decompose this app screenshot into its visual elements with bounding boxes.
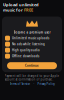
button[interactable]: Offline downloads: [5, 53, 59, 59]
button[interactable]: No ads while listening: [5, 41, 59, 47]
staticText: Offline downloads: [12, 54, 39, 58]
button[interactable]: High quality audio: [5, 47, 59, 53]
staticText: High quality audio: [12, 48, 40, 52]
staticText: Payment will be charged to your Apple ac…: [4, 74, 59, 81]
staticText: Upload unlimited: [3, 2, 39, 7]
staticText: Continue: [25, 64, 39, 67]
button[interactable]: Unlimited music uploads: [5, 35, 59, 41]
staticText: No ads while listening: [12, 42, 45, 46]
staticText: Terms of Service · Privacy Policy: [9, 82, 54, 86]
staticText: Become a premium user: [13, 31, 50, 34]
staticText: Unlimited music uploads: [12, 36, 49, 40]
button[interactable]: Continue: [2, 62, 62, 69]
staticText: music for: [3, 7, 23, 13]
staticText: FREE: [24, 7, 33, 13]
button[interactable]: Terms of Service · Privacy Policy: [9, 82, 54, 86]
